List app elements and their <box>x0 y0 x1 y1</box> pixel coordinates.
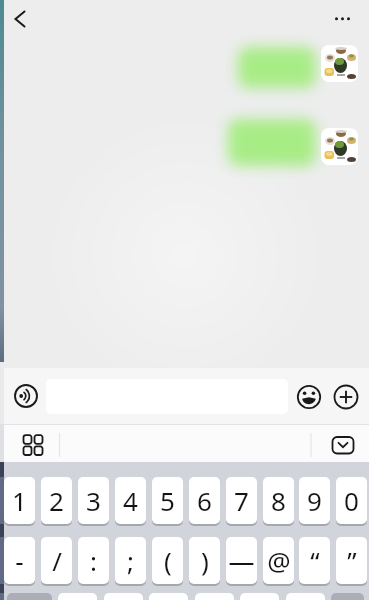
staticText: 4 <box>123 483 138 518</box>
staticText: 8 <box>271 483 286 518</box>
staticText: 9 <box>307 483 322 518</box>
button[interactable] <box>330 434 356 456</box>
button[interactable]: 1 <box>4 477 35 526</box>
button[interactable] <box>330 8 356 30</box>
button[interactable]: ” <box>336 537 367 586</box>
staticText: 6 <box>197 483 212 518</box>
staticText: 7 <box>234 483 249 518</box>
button[interactable]: 5 <box>152 477 183 526</box>
staticText: ” <box>347 543 357 578</box>
staticText: “ <box>310 543 320 578</box>
staticText: 0 <box>344 483 359 518</box>
button[interactable]: ) <box>189 537 220 586</box>
button[interactable]: / <box>41 537 72 586</box>
staticText: ( <box>164 543 172 578</box>
button[interactable] <box>334 385 358 409</box>
button[interactable] <box>8 6 34 32</box>
button[interactable] <box>331 593 364 600</box>
staticText: ; <box>127 543 134 578</box>
staticText: — <box>228 543 255 578</box>
staticText: 5 <box>160 483 175 518</box>
button[interactable] <box>321 128 358 165</box>
staticText: - <box>15 543 24 578</box>
button[interactable] <box>21 433 45 457</box>
button[interactable]: : <box>78 537 109 586</box>
staticText: : <box>90 543 97 578</box>
button[interactable]: 7 <box>226 477 257 526</box>
button[interactable] <box>321 45 358 82</box>
staticText: 1 <box>12 483 27 518</box>
staticText: 2 <box>49 483 64 518</box>
staticText: 3 <box>86 483 101 518</box>
button[interactable]: “ <box>299 537 330 586</box>
button[interactable] <box>297 385 321 409</box>
staticText: ) <box>201 543 209 578</box>
button[interactable]: @ <box>263 537 294 586</box>
button[interactable]: ( <box>152 537 183 586</box>
button[interactable]: 4 <box>115 477 146 526</box>
button[interactable]: 3 <box>78 477 109 526</box>
button[interactable]: 2 <box>41 477 72 526</box>
button[interactable]: 6 <box>189 477 220 526</box>
button[interactable] <box>7 593 52 600</box>
button[interactable]: 9 <box>299 477 330 526</box>
button[interactable]: 0 <box>336 477 367 526</box>
staticText: / <box>52 543 62 578</box>
button[interactable]: — <box>226 537 257 586</box>
staticText: @ <box>267 543 291 578</box>
button[interactable] <box>14 384 38 408</box>
button[interactable]: 8 <box>263 477 294 526</box>
button[interactable]: ; <box>115 537 146 586</box>
button[interactable]: - <box>4 537 35 586</box>
